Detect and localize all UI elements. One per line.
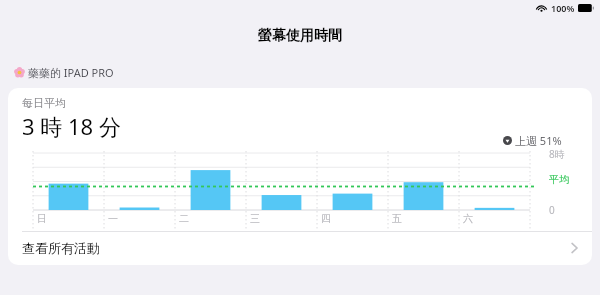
staticText: 五 [392,212,402,225]
staticText: 一 [108,212,118,225]
staticText: 四 [321,212,331,225]
staticText: 六 [463,212,473,225]
staticText: 3 時 18 分 [22,111,121,141]
staticText: 藥藥的 IPAD PRO [28,65,114,80]
staticText: 0 [549,203,555,217]
staticText: 查看所有活動 [22,240,100,256]
staticText: 二 [179,212,189,225]
staticText: 三 [250,212,260,225]
staticText: 平均 [549,173,569,186]
staticText: 100% [551,2,575,14]
button[interactable]: 查看所有活動 [8,231,592,265]
staticText: 8時 [549,147,565,161]
staticText: 上週 51% [515,133,562,148]
staticText: 每日平均 [22,96,66,110]
staticText: 螢幕使用時間 [258,27,342,45]
staticText: 日 [37,212,47,225]
